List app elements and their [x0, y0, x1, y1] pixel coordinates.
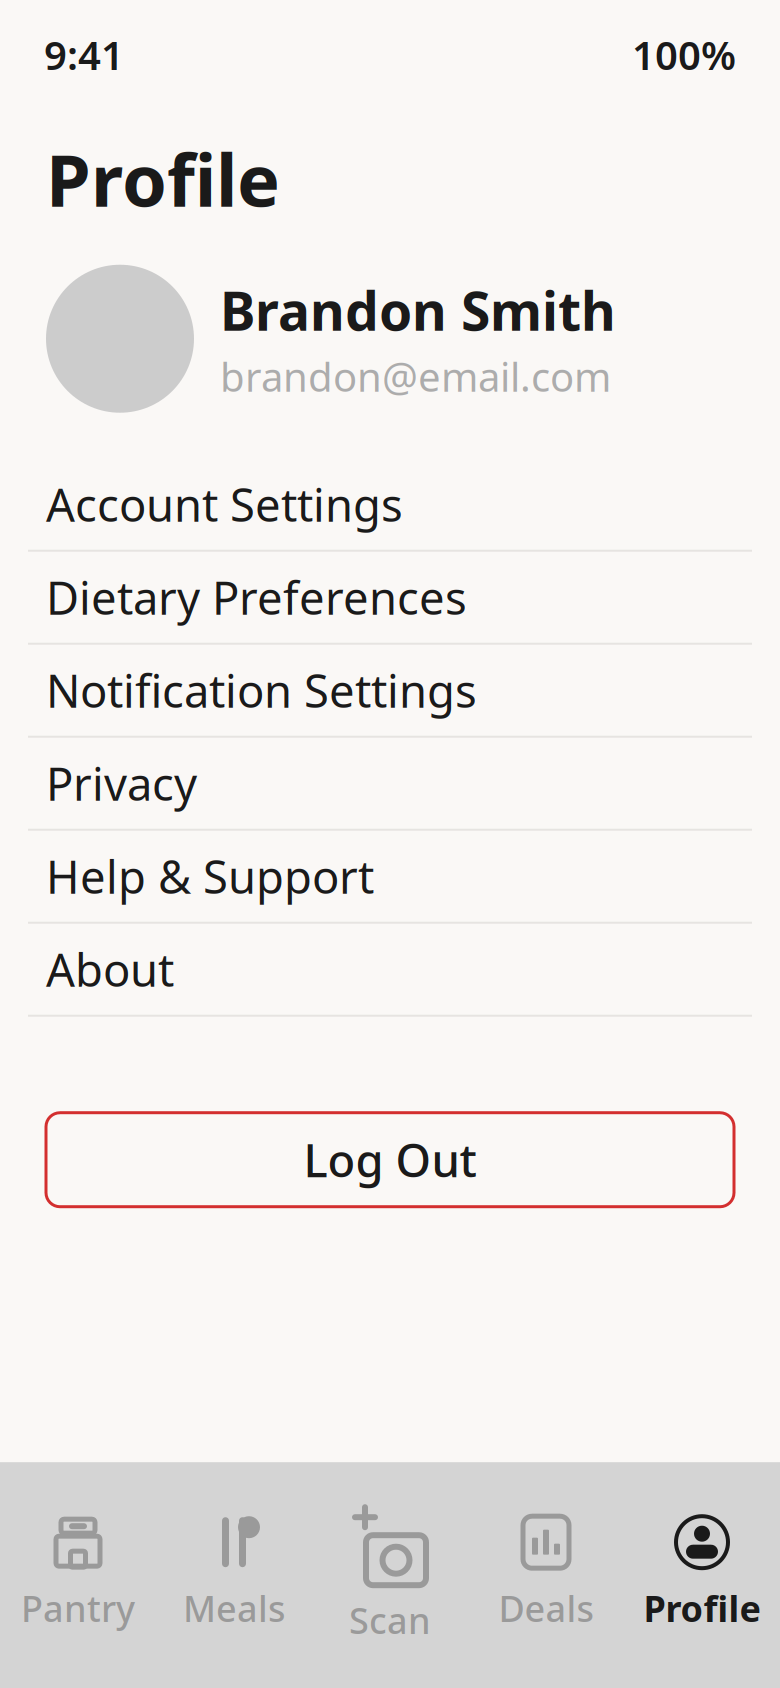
staticText: brandon@email.com: [220, 350, 611, 403]
button[interactable]: Pantry: [0, 1514, 156, 1632]
button[interactable]: Scan: [312, 1502, 468, 1644]
button[interactable]: Meals: [156, 1514, 312, 1632]
button[interactable]: Account Settings: [0, 459, 780, 552]
button[interactable]: Privacy: [0, 738, 780, 831]
staticText: Brandon Smith: [220, 275, 616, 346]
staticText: Dietary Preferences: [46, 567, 467, 627]
button[interactable]: Help & Support: [0, 831, 780, 924]
staticText: Meals: [183, 1584, 285, 1632]
staticText: Pantry: [21, 1584, 135, 1632]
staticText: 100%: [632, 28, 736, 81]
button[interactable]: About: [0, 924, 780, 1017]
button[interactable]: Deals: [468, 1514, 624, 1632]
staticText: Notification Settings: [46, 660, 477, 720]
staticText: About: [46, 939, 174, 999]
staticText: Profile: [46, 131, 280, 227]
staticText: Log Out: [303, 1130, 476, 1190]
button[interactable]: Profile: [624, 1514, 780, 1632]
button[interactable]: Log Out: [46, 1113, 734, 1207]
staticText: Profile: [643, 1584, 760, 1632]
staticText: Privacy: [46, 753, 197, 813]
button[interactable]: Notification Settings: [0, 645, 780, 738]
staticText: Help & Support: [46, 846, 374, 906]
staticText: Scan: [349, 1596, 431, 1644]
button[interactable]: Dietary Preferences: [0, 552, 780, 645]
staticText: Account Settings: [46, 474, 403, 534]
staticText: Deals: [498, 1584, 593, 1632]
staticText: 9:41: [44, 28, 124, 81]
